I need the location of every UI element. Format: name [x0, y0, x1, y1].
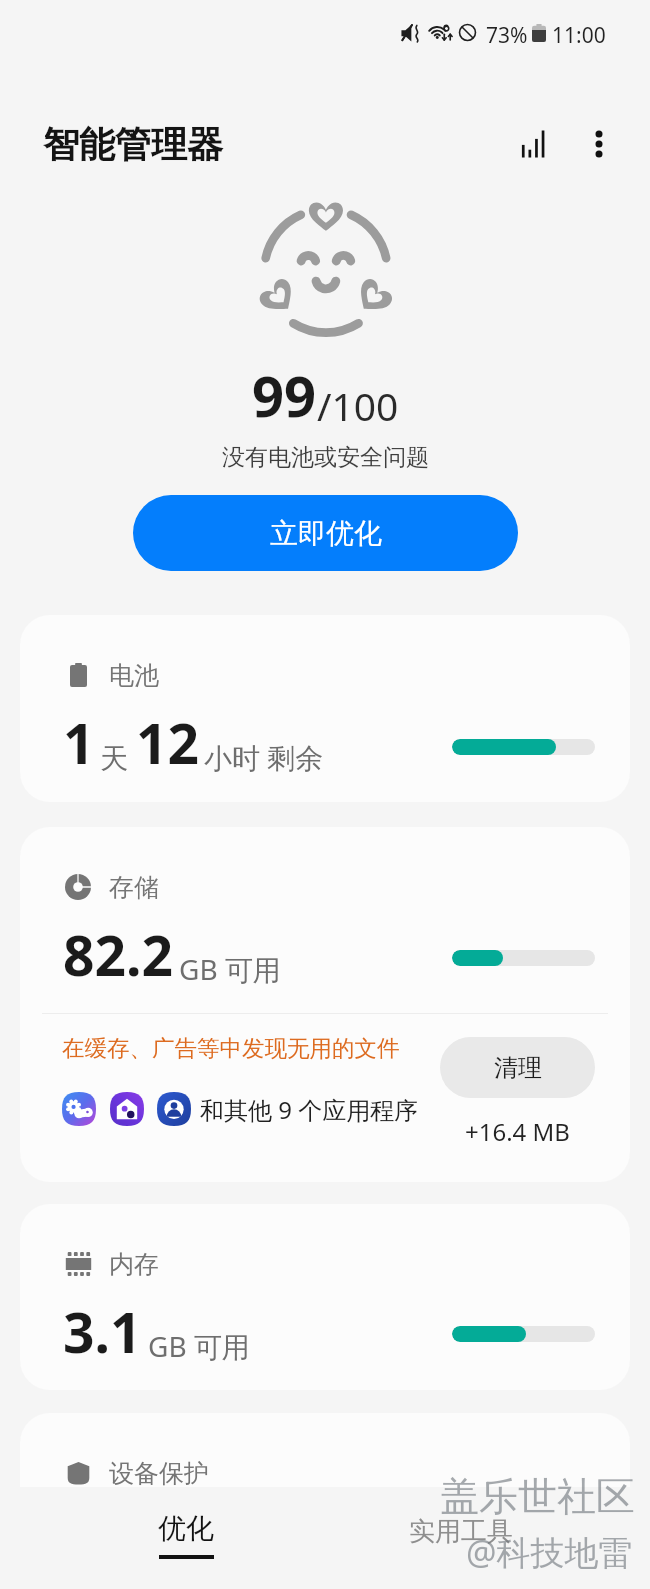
staticText: 设备保护	[109, 1458, 209, 1489]
button[interactable]: 电池	[20, 615, 630, 802]
staticText: 82.2	[63, 917, 173, 992]
button[interactable]: More options	[570, 115, 628, 173]
staticText: 立即优化	[270, 516, 382, 551]
staticText: 内存	[109, 1249, 159, 1280]
staticText: 实用工具	[409, 1515, 513, 1548]
staticText: GB 可用	[148, 1327, 250, 1365]
button[interactable]: 设备保护	[20, 1413, 630, 1589]
staticText: GB 可用	[179, 950, 281, 988]
staticText: 小时 剩余	[204, 738, 324, 776]
staticText: 3.1	[63, 1294, 142, 1369]
staticText: 存储	[109, 872, 159, 903]
staticText: 99	[252, 357, 317, 433]
staticText: 清理	[494, 1053, 542, 1083]
button[interactable]: 清理	[440, 1037, 595, 1098]
button[interactable]: 优化	[111, 1487, 261, 1589]
staticText: 智能管理器	[43, 122, 223, 167]
staticText: 电池	[109, 660, 159, 691]
staticText: 天	[100, 741, 128, 776]
staticText: 和其他 9 个应用程序	[200, 1093, 419, 1126]
staticText: 盖乐世社区	[440, 1472, 635, 1521]
button[interactable]: 内存	[20, 1204, 630, 1390]
staticText: 1	[63, 705, 95, 780]
staticText: @科技地雷	[466, 1529, 633, 1575]
button[interactable]: 实用工具	[386, 1487, 536, 1589]
staticText: 优化	[158, 1511, 214, 1546]
staticText: 12	[136, 705, 199, 780]
button[interactable]: 存储	[20, 827, 630, 1182]
button[interactable]: Usage statistics	[504, 115, 562, 173]
staticText: 11:00	[552, 21, 606, 50]
staticText: 没有电池或安全问题	[222, 443, 429, 472]
staticText: +16.4 MB	[465, 1115, 570, 1148]
staticText: 在缓存、广告等中发现无用的文件	[62, 1034, 400, 1062]
staticText: 73%	[486, 21, 528, 50]
button[interactable]: 立即优化	[133, 495, 518, 571]
staticText: /100	[317, 379, 399, 432]
